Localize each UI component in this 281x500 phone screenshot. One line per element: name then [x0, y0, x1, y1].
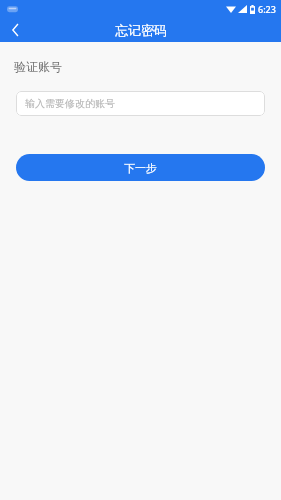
button[interactable]: 输入需要修改的账号 [16, 91, 265, 116]
button[interactable]: Back [0, 17, 30, 42]
staticText: 忘记密码 [115, 22, 167, 38]
staticText: 输入需要修改的账号 [25, 97, 115, 110]
staticText: 下一步 [124, 161, 157, 175]
button[interactable]: 下一步 [16, 154, 265, 181]
staticText: 验证账号 [14, 59, 62, 74]
staticText: 6:23 [258, 3, 276, 15]
